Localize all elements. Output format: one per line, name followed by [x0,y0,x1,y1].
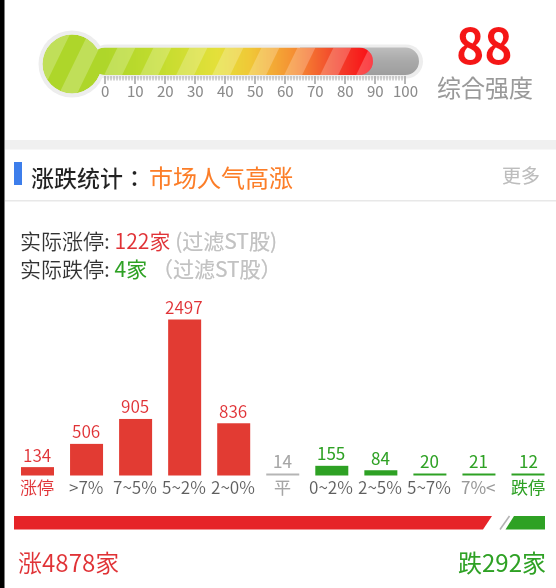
staticText: 7%< [461,474,496,499]
staticText: 跌292家 [458,544,546,579]
staticText: 涨跌统计： [31,160,146,193]
staticText: >7% [69,474,104,499]
staticText: 14 [273,448,292,473]
staticText: 更多 [502,161,541,189]
staticText: 0 [101,80,110,102]
staticText: 实际跌停: 4家 （过滤ST股） [20,253,282,283]
staticText: 21 [469,448,488,473]
staticText: 10 [127,80,144,102]
staticText: 836 [219,398,248,423]
staticText: 20 [420,448,439,473]
staticText: 平 [274,474,291,499]
staticText: 90 [367,80,384,102]
staticText: 84 [371,445,390,470]
staticText: 70 [307,80,324,102]
staticText: 30 [187,80,204,102]
staticText: 905 [121,393,150,418]
staticText: 100 [393,80,418,102]
staticText: 506 [72,418,101,443]
button[interactable]: 更多 [496,160,548,190]
staticText: 综合强度 [437,69,533,104]
staticText: 40 [217,80,234,102]
staticText: 155 [317,440,346,465]
staticText: 7~5% [113,474,157,499]
staticText: 涨停 [20,474,54,499]
staticText: 涨4878家 [18,544,120,579]
staticText: 跌停 [511,474,545,499]
staticText: 2~5% [358,474,402,499]
staticText: 实际涨停: 122家 (过滤ST股) [20,225,278,255]
staticText: 5~7% [407,474,451,499]
staticText: 88 [456,8,513,78]
staticText: 20 [157,80,174,102]
staticText: 2497 [165,294,203,319]
staticText: 市场人气高涨 [149,159,293,194]
staticText: 60 [277,80,294,102]
staticText: 50 [247,80,264,102]
staticText: 0~2% [309,474,353,499]
staticText: 12 [519,448,538,473]
staticText: 5~2% [162,474,206,499]
staticText: 80 [337,80,354,102]
staticText: 134 [23,442,52,467]
staticText: 2~0% [211,474,255,499]
